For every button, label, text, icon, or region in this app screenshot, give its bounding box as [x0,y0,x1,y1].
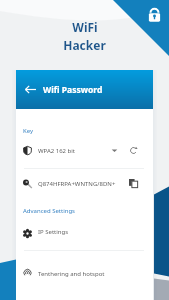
staticText: Key [23,127,34,135]
staticText: WiFi [72,19,98,35]
staticText: Tenthering and hotspot [38,270,105,278]
other: Back [25,84,36,95]
button[interactable]: Tenthering and hotspot [16,264,153,283]
button[interactable]: IP Settings [16,222,153,241]
button[interactable]: Expand [111,147,118,154]
staticText: Wifi Password [43,84,103,96]
button[interactable]: WPA2 162 bit [16,141,153,160]
staticText: Q874HFRPA+WNTNG/8DN+ [38,180,116,188]
button[interactable]: Back [16,70,153,109]
staticText: Hacker [63,37,106,53]
staticText: IP Settings [38,228,69,236]
button[interactable]: Q874HFRPA+WNTNG/8DN+ [16,174,153,193]
staticText: WPA2 162 bit [38,147,75,155]
button[interactable]: Copy password [129,179,138,188]
button[interactable]: Secure lock [146,6,163,23]
button[interactable]: Refresh [129,146,138,155]
staticText: Advanced Settings [23,207,75,215]
